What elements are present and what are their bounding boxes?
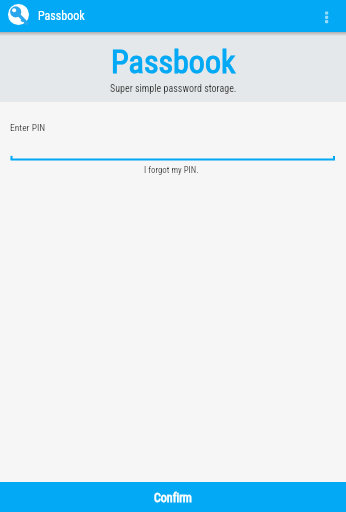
button[interactable]: Confirm [0,482,346,512]
button[interactable]: Passbook [0,0,346,32]
staticText: Super simple password storage. [110,83,237,95]
staticText: Passbook [111,43,236,81]
button[interactable] [316,1,346,31]
staticText: Confirm [154,491,192,505]
staticText: Passbook [38,9,85,23]
staticText: Enter PIN [10,122,46,133]
button[interactable]: I forgot my PIN. [144,165,199,175]
